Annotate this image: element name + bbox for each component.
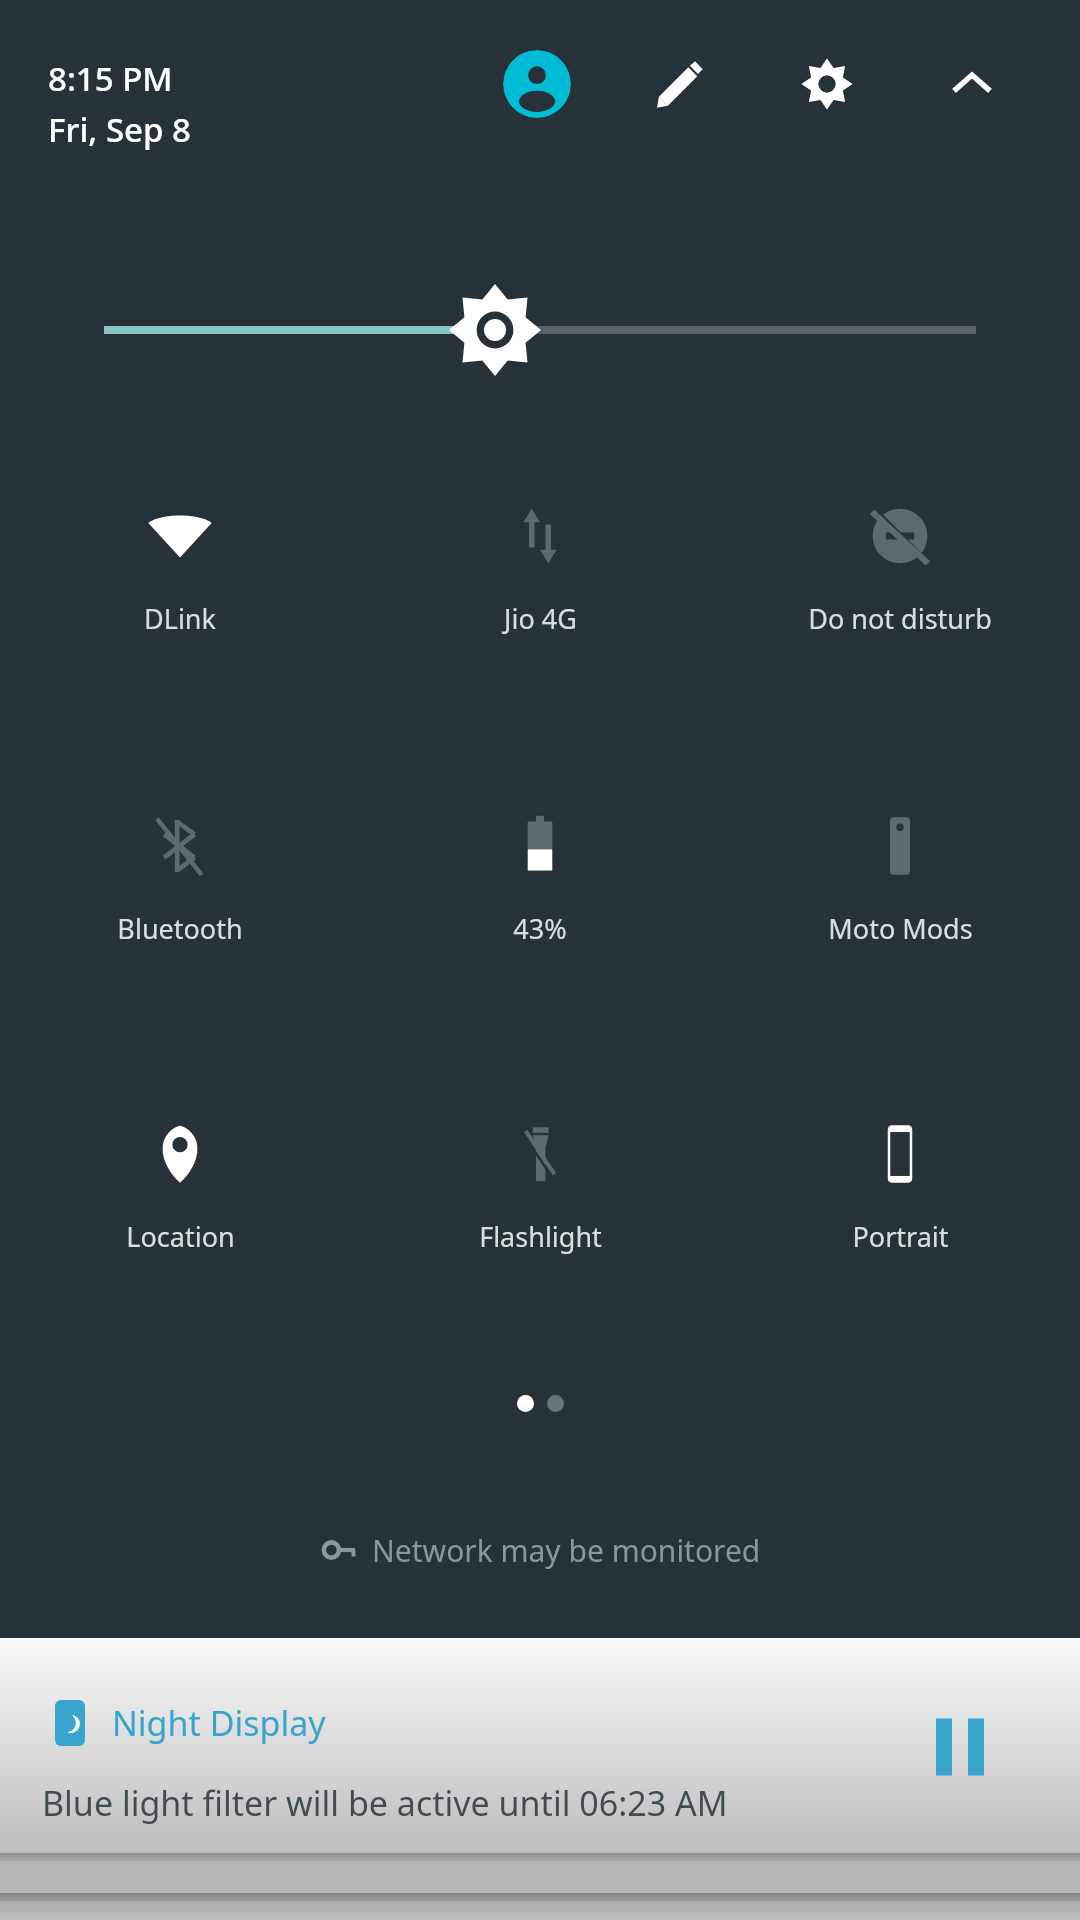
button[interactable]: Collapse (940, 52, 1004, 116)
button[interactable]: Edit tiles (648, 52, 712, 116)
staticText: Night Display (112, 1700, 326, 1746)
staticText: Network may be monitored (372, 1530, 761, 1571)
button[interactable]: DLink (0, 470, 360, 675)
staticText: 8:15 PM (48, 56, 173, 101)
staticText: Location (126, 1218, 235, 1255)
staticText: Jio 4G (504, 600, 577, 637)
button[interactable]: Do not disturb (720, 470, 1080, 675)
button[interactable]: Network may be monitored (0, 1520, 1080, 1580)
button[interactable]: Location (0, 1088, 360, 1293)
staticText: Moto Mods (828, 910, 973, 947)
staticText: Fri, Sep 8 (48, 107, 191, 152)
button[interactable]: User profile (503, 50, 571, 118)
button[interactable]: Brightness (0, 290, 1080, 370)
button[interactable]: Jio 4G (360, 470, 720, 675)
button[interactable]: Portrait (720, 1088, 1080, 1293)
staticText: Blue light filter will be active until 0… (42, 1780, 728, 1826)
staticText: Do not disturb (808, 600, 992, 637)
button[interactable]: Night Display (0, 1638, 1080, 1853)
staticText: 43% (513, 910, 567, 947)
button[interactable]: Flashlight (360, 1088, 720, 1293)
button[interactable]: 43% (360, 780, 720, 985)
staticText: Flashlight (479, 1218, 602, 1255)
button[interactable]: Pause (916, 1708, 1024, 1786)
button[interactable]: Settings (795, 52, 859, 116)
staticText: Bluetooth (117, 910, 243, 947)
staticText: DLink (144, 600, 216, 637)
button[interactable]: Bluetooth (0, 780, 360, 985)
button[interactable]: Moto Mods (720, 780, 1080, 985)
staticText: Portrait (852, 1218, 949, 1255)
